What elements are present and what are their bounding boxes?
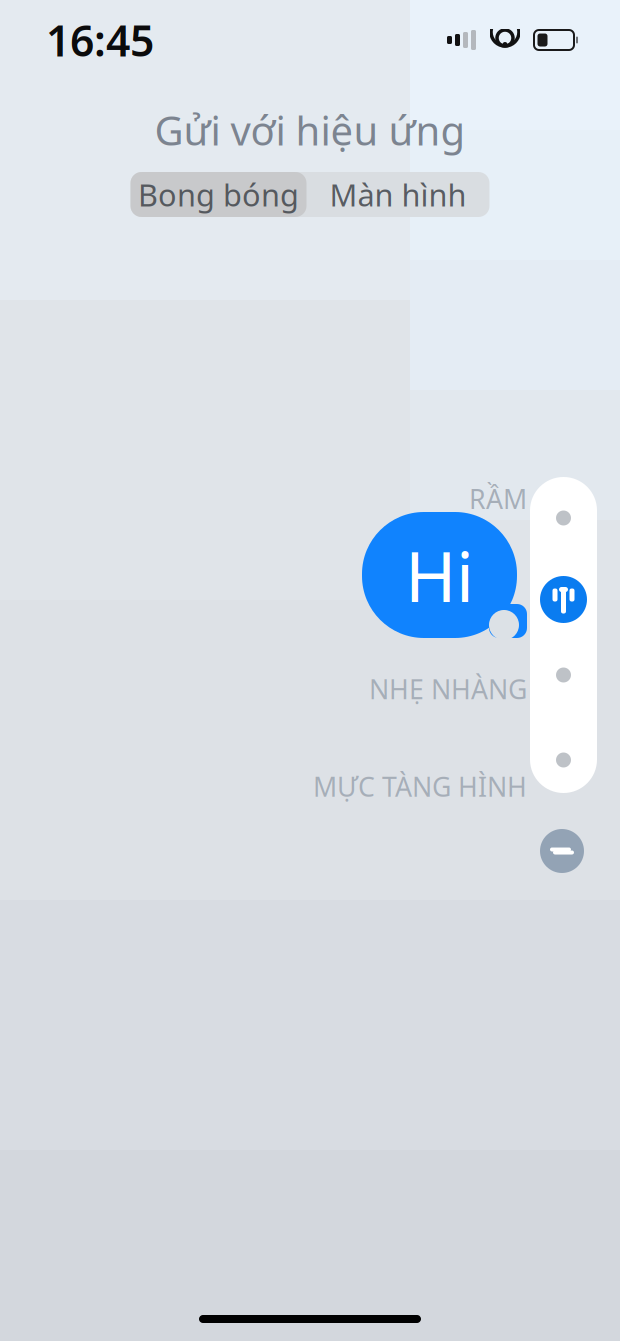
staticText: MỰC TÀNG HÌNH: [313, 769, 527, 804]
staticText: RẦM: [469, 481, 527, 516]
button[interactable]: Gửi với hiệu ứng Mực tàng hình: [530, 746, 597, 774]
button[interactable]: Màn hình: [306, 172, 489, 217]
staticText: NHẸ NHÀNG: [369, 671, 527, 707]
button[interactable]: Gửi: [530, 576, 597, 623]
button[interactable]: Bong bóng: [130, 172, 306, 217]
staticText: Màn hình: [329, 174, 466, 215]
button[interactable]: Đóng: [540, 829, 584, 873]
staticText: Gửi với hiệu ứng: [154, 103, 465, 156]
staticText: Bong bóng: [138, 174, 299, 215]
staticText: Hi: [405, 529, 474, 621]
button[interactable]: Gửi với hiệu ứng Rầm: [530, 504, 597, 532]
staticText: 16:45: [46, 12, 154, 68]
button[interactable]: Gửi với hiệu ứng Nhẹ nhàng: [530, 661, 597, 689]
